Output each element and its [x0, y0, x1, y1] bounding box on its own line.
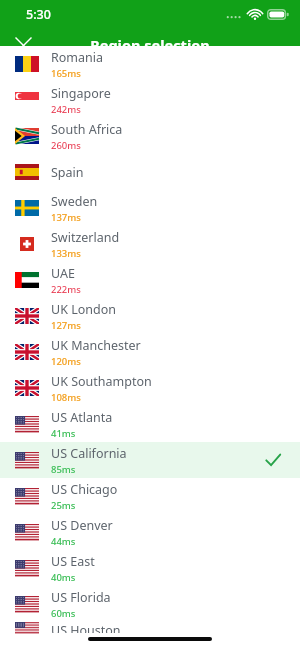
staticText: Sweden [51, 193, 98, 210]
button[interactable]: Switzerland [0, 226, 300, 262]
staticText: Spain [51, 164, 84, 181]
staticText: US East [51, 553, 95, 570]
staticText: 44ms [51, 535, 76, 548]
staticText: US Denver [51, 517, 113, 534]
staticText: 40ms [51, 571, 76, 584]
button[interactable]: US Denver [0, 514, 300, 550]
staticText: 137ms [51, 211, 81, 224]
staticText: 127ms [51, 319, 81, 332]
button[interactable]: Spain [0, 154, 300, 190]
button[interactable]: US Houston [0, 622, 300, 633]
staticText: Switzerland [51, 229, 120, 246]
button[interactable]: Singapore [0, 82, 300, 118]
button[interactable]: Close [6, 28, 40, 62]
button[interactable]: South Africa [0, 118, 300, 154]
button[interactable]: UK London [0, 298, 300, 334]
staticText: South Africa [51, 121, 123, 138]
staticText: US Florida [51, 589, 111, 606]
staticText: US Chicago [51, 481, 118, 498]
staticText: Singapore [51, 85, 111, 102]
staticText: 85ms [51, 463, 76, 476]
staticText: UK London [51, 301, 116, 318]
staticText: 41ms [51, 427, 76, 440]
staticText: 108ms [51, 391, 81, 404]
staticText: 60ms [51, 607, 76, 620]
staticText: Region selection [90, 35, 210, 55]
staticText: 242ms [51, 103, 81, 116]
button[interactable]: US Chicago [0, 478, 300, 514]
staticText: US Atlanta [51, 409, 113, 426]
staticText: Romania [51, 49, 104, 66]
staticText: 133ms [51, 247, 81, 260]
button[interactable]: UAE [0, 262, 300, 298]
button[interactable]: Romania [0, 46, 300, 82]
button[interactable]: UK Southampton [0, 370, 300, 406]
button[interactable]: Sweden [0, 190, 300, 226]
button[interactable]: UK Manchester [0, 334, 300, 370]
staticText: 222ms [51, 283, 81, 296]
staticText: UK Manchester [51, 337, 141, 354]
button[interactable]: US East [0, 550, 300, 586]
staticText: US California [51, 445, 127, 462]
staticText: 120ms [51, 355, 81, 368]
staticText: US Houston [51, 622, 121, 633]
staticText: 25ms [51, 499, 76, 512]
staticText: UAE [51, 265, 75, 282]
button[interactable]: US Florida [0, 586, 300, 622]
staticText: 260ms [51, 139, 81, 152]
button[interactable]: US California [0, 442, 300, 478]
staticText: 5:30 [26, 6, 51, 23]
staticText: 165ms [51, 67, 81, 80]
staticText: UK Southampton [51, 373, 152, 390]
button[interactable]: US Atlanta [0, 406, 300, 442]
